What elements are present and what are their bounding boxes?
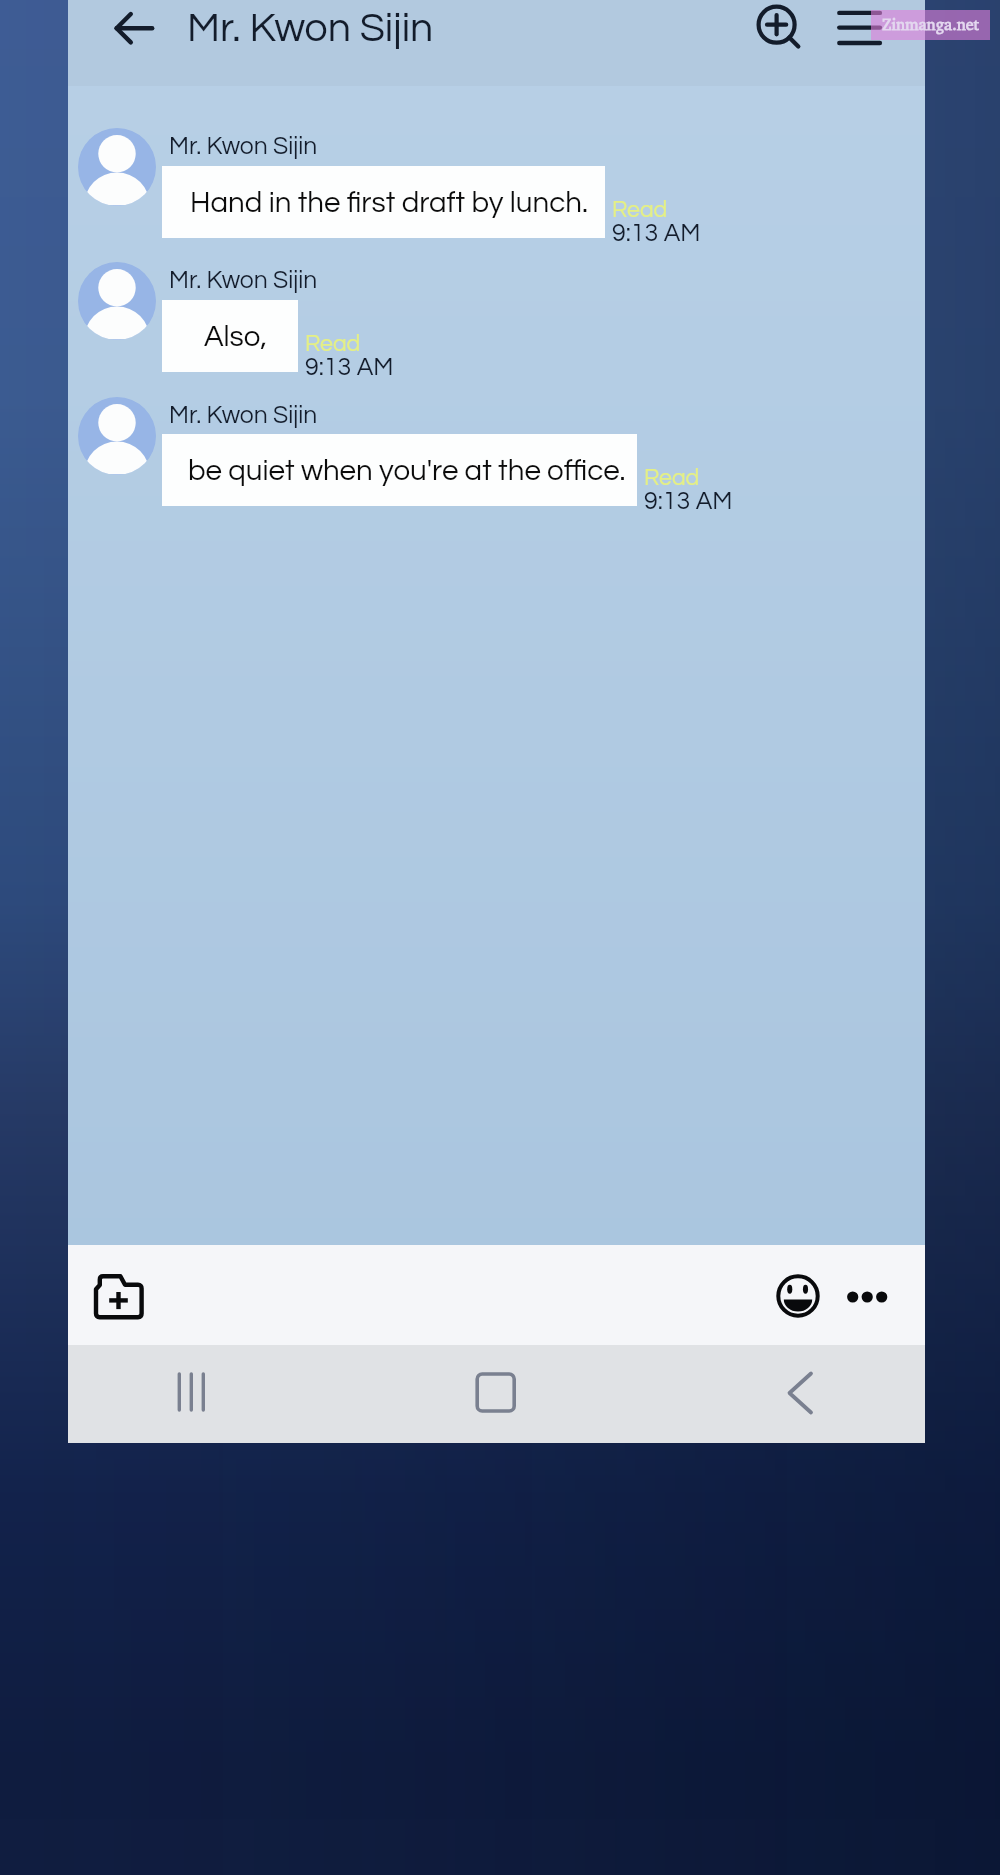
button[interactable]: Menu (820, 0, 906, 86)
button[interactable]: Profile photo (78, 397, 156, 475)
button[interactable]: be quiet when you're at the office. (162, 434, 637, 506)
button[interactable]: More options (836, 1261, 906, 1331)
staticText: be quiet when you're at the office. (188, 456, 626, 486)
button[interactable]: Recent apps (151, 1353, 231, 1433)
staticText: Read (305, 332, 361, 356)
button[interactable]: Profile photo (78, 262, 156, 340)
staticText: Mr. Kwon Sijin (169, 403, 318, 428)
button[interactable]: Home (456, 1353, 536, 1433)
button[interactable]: Back (96, 0, 182, 86)
staticText: 9:13 AM (305, 354, 394, 380)
staticText: 9:13 AM (612, 220, 701, 246)
button[interactable]: Also, (162, 300, 298, 372)
staticText: Mr. Kwon Sijin (169, 268, 318, 293)
staticText: Zinmanga.net (871, 15, 990, 34)
button[interactable]: Profile photo (78, 128, 156, 206)
button[interactable]: Back (760, 1353, 840, 1433)
staticText: Read (612, 198, 668, 222)
staticText: 9:13 AM (644, 488, 733, 514)
button[interactable]: Hand in the first draft by lunch. (162, 166, 605, 238)
staticText: Mr. Kwon Sijin (187, 7, 434, 49)
staticText: Also, (204, 322, 267, 352)
button[interactable]: Emoji (758, 1256, 838, 1336)
staticText: Read (644, 466, 700, 490)
staticText: Mr. Kwon Sijin (169, 134, 318, 159)
staticText: Hand in the first draft by lunch. (190, 188, 588, 218)
button[interactable]: Attach file (85, 1255, 165, 1335)
button[interactable]: Search (733, 0, 819, 86)
